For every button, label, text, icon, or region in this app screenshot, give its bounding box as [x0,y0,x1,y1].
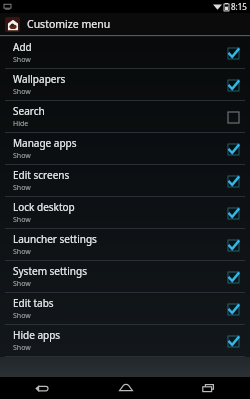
button[interactable]: Back [0,377,84,399]
button[interactable]: Checked [225,301,241,317]
staticText: Hide [13,119,29,129]
button[interactable]: System settings [0,261,250,292]
staticText: Search [13,104,45,118]
button[interactable]: Checked [225,45,241,61]
staticText: Show [13,87,31,97]
button[interactable]: Wallpapers [0,69,250,100]
staticText: Show [13,215,31,225]
staticText: Show [13,183,31,193]
button[interactable]: Edit tabs [0,293,250,324]
button[interactable]: Unchecked [225,109,241,125]
button[interactable]: Checked [225,141,241,157]
button[interactable]: Launcher settings [0,229,250,260]
button[interactable]: Edit screens [0,165,250,196]
button[interactable]: Checked [225,333,241,349]
staticText: Show [13,151,31,161]
staticText: Manage apps [13,136,77,150]
button[interactable]: Checked [225,269,241,285]
button[interactable]: Checked [225,173,241,189]
staticText: Launcher settings [13,232,97,246]
staticText: Show [13,247,31,257]
staticText: Edit screens [13,168,70,182]
button[interactable]: Recent apps [167,377,250,399]
button[interactable]: Search [0,101,250,132]
staticText: 8:15 [231,1,247,12]
staticText: Show [13,311,31,321]
button[interactable]: Checked [225,237,241,253]
staticText: Show [13,55,31,65]
staticText: Wallpapers [13,72,66,86]
button[interactable]: Checked [225,77,241,93]
staticText: System settings [13,264,87,278]
staticText: Hide apps [13,328,61,342]
button[interactable]: Checked [225,205,241,221]
button[interactable]: Hide apps [0,325,250,356]
button[interactable]: Manage apps [0,133,250,164]
staticText: Lock desktop [13,200,75,214]
staticText: Show [13,343,31,353]
button[interactable]: Add [0,37,250,68]
staticText: Customize menu [27,17,111,31]
staticText: Edit tabs [13,296,54,310]
staticText: Add [13,40,32,54]
button[interactable]: Lock desktop [0,197,250,228]
staticText: Show [13,279,31,289]
button[interactable]: Home [84,377,167,399]
